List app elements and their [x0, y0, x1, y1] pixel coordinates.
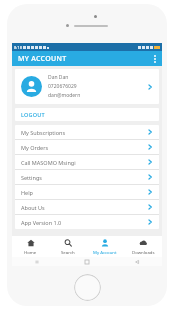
button[interactable]: Recents	[12, 257, 62, 266]
staticText: Search	[61, 249, 75, 255]
staticText: Settings	[21, 174, 147, 181]
staticText: Home	[24, 249, 37, 255]
button[interactable]: Home	[62, 257, 112, 266]
button[interactable]: Call MASOMO Msingi	[15, 155, 159, 169]
staticText: Call MASOMO Msingi	[21, 159, 147, 166]
staticText: Help	[21, 189, 147, 196]
button[interactable]: My Account	[86, 236, 124, 257]
button[interactable]: My Subscriptions	[15, 125, 159, 139]
staticText: 0720676029	[48, 83, 77, 90]
button[interactable]: About Us	[15, 200, 159, 214]
staticText: Dan Dan	[48, 74, 69, 81]
staticText: My Orders	[21, 144, 147, 151]
staticText: MY ACCOUNT	[18, 54, 67, 64]
staticText: My Account	[93, 249, 117, 255]
button[interactable]: Help	[15, 185, 159, 199]
staticText: LOGOUT	[21, 111, 45, 118]
button[interactable]: My Orders	[15, 140, 159, 154]
staticText: App Version 1.0	[21, 219, 147, 226]
staticText: Downloads	[132, 249, 155, 255]
button[interactable]: App Version 1.0	[15, 215, 159, 229]
button[interactable]: LOGOUT	[15, 108, 159, 121]
staticText: dan@modern	[48, 92, 81, 99]
button[interactable]: Search	[49, 236, 86, 257]
staticText: About Us	[21, 204, 147, 211]
button[interactable]: Back	[112, 257, 162, 266]
button[interactable]: Dan Dan	[15, 69, 159, 104]
button[interactable]: More options	[148, 51, 162, 66]
button[interactable]: Downloads	[124, 236, 162, 257]
staticText: 8:18	[14, 45, 22, 50]
button[interactable]: Home	[12, 236, 49, 257]
staticText: My Subscriptions	[21, 129, 147, 136]
button[interactable]: Settings	[15, 170, 159, 184]
